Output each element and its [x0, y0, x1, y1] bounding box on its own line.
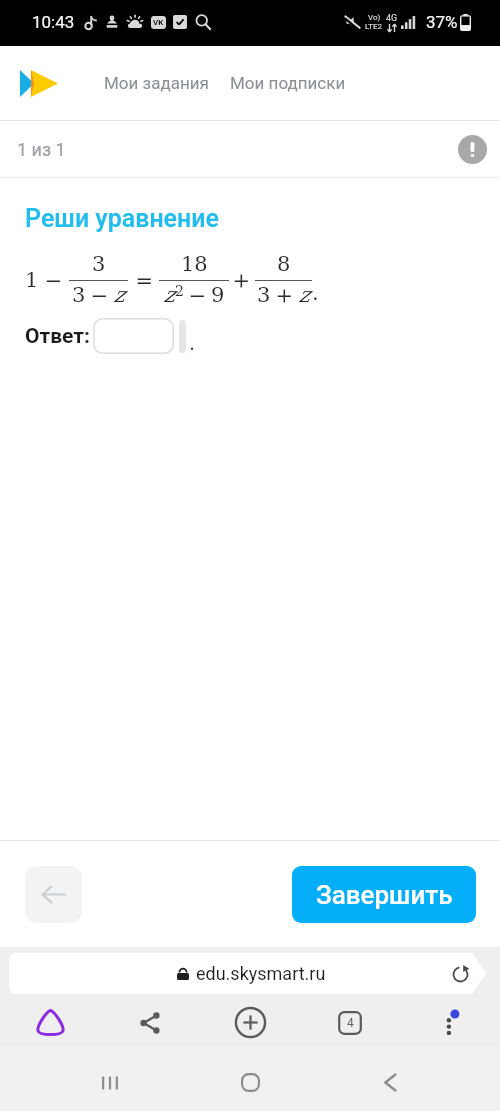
staticText: .: [312, 283, 319, 304]
staticText: LTE2: [365, 22, 383, 31]
staticText: 37%: [426, 12, 458, 32]
button[interactable]: Home: [0, 999, 100, 1046]
other: Skysmart logo: [20, 70, 58, 97]
staticText: 3: [72, 285, 86, 306]
staticText: Завершить: [316, 880, 453, 910]
staticText: 4G: [386, 13, 398, 24]
button[interactable]: Share: [100, 999, 200, 1046]
staticText: VK: [153, 18, 164, 27]
staticText: Vo): [368, 13, 381, 22]
staticText: 4: [347, 1016, 354, 1030]
staticText: 18: [181, 254, 208, 275]
staticText: 10:43: [32, 12, 75, 32]
staticText: +: [233, 270, 250, 291]
staticText: z: [298, 285, 310, 306]
staticText: Ответ:: [25, 324, 90, 349]
button[interactable]: Home: [215, 1054, 285, 1111]
button[interactable]: More options: [400, 999, 500, 1046]
staticText: z: [113, 285, 125, 306]
staticText: 3: [257, 285, 271, 306]
staticText: 1 из 1: [17, 139, 66, 160]
staticText: 3: [92, 254, 106, 275]
staticText: −: [91, 285, 108, 306]
button[interactable]: Recents: [75, 1054, 145, 1111]
staticText: Реши уравнение: [25, 204, 219, 233]
button[interactable]: [93, 318, 174, 354]
staticText: edu.skysmart.ru: [196, 963, 326, 984]
staticText: z: [163, 285, 175, 306]
staticText: 2: [175, 285, 184, 299]
staticText: .: [189, 335, 196, 354]
button[interactable]: New tab: [200, 999, 300, 1046]
staticText: −: [45, 270, 62, 291]
button[interactable]: Мои задания: [104, 73, 209, 93]
staticText: −: [189, 285, 206, 306]
button[interactable]: Завершить: [292, 866, 476, 923]
staticText: 9: [211, 285, 225, 306]
staticText: 8: [277, 254, 291, 275]
staticText: =: [136, 270, 153, 291]
button[interactable]: Info: [458, 135, 487, 164]
button[interactable]: Back: [25, 866, 82, 923]
staticText: 1: [25, 270, 39, 291]
staticText: +: [276, 285, 293, 306]
button[interactable]: Reload: [447, 961, 473, 987]
button[interactable]: Мои подписки: [230, 73, 346, 93]
button[interactable]: Tabs: [300, 999, 400, 1046]
button[interactable]: Back: [355, 1054, 425, 1111]
